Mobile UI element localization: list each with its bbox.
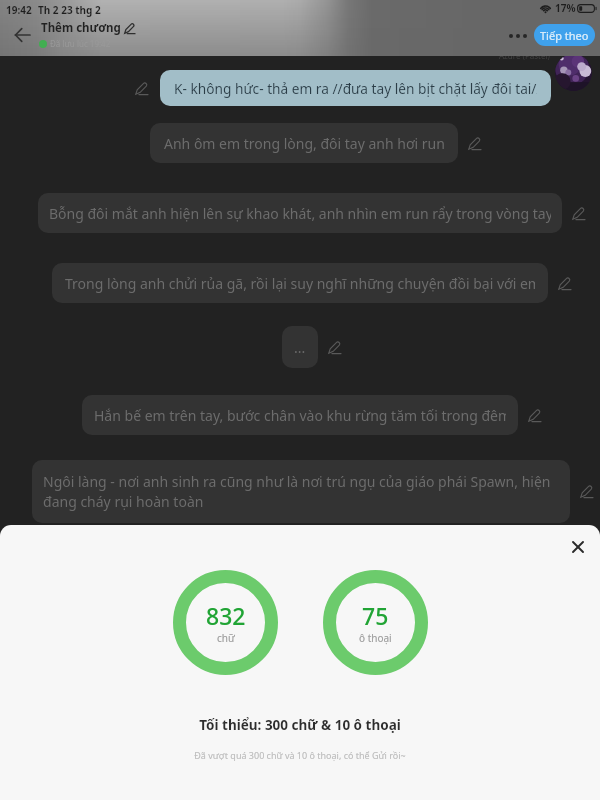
button[interactable]: Edit message	[327, 340, 342, 355]
staticText: Bỗng đôi mắt anh hiện lên sự khao khát, …	[49, 204, 551, 223]
staticText: chữ	[217, 631, 235, 645]
staticText: Anh ôm em trong lòng, đôi tay anh hơi ru…	[164, 134, 444, 153]
button[interactable]: Hắn bế em trên tay, bước chân vào khu rừ…	[82, 395, 518, 435]
button[interactable]: Edit message	[134, 81, 149, 96]
button[interactable]: Anh ôm em trong lòng, đôi tay anh hơi ru…	[150, 123, 458, 163]
button[interactable]: ...	[282, 326, 318, 368]
button[interactable]: Trong lòng anh chửi rủa gã, rồi lại suy …	[52, 263, 548, 303]
button[interactable]: Character avatar	[555, 54, 592, 91]
staticText: 19:42	[6, 3, 32, 17]
staticText: Đã lưu lúc 19:42	[50, 38, 111, 49]
button[interactable]: K- không hức- thả em ra //đưa tay lên bị…	[160, 70, 551, 106]
staticText: ...	[294, 338, 306, 357]
button[interactable]: Edit message	[571, 206, 586, 221]
staticText: ô thoại	[359, 631, 392, 645]
staticText: Thêm chương	[41, 20, 121, 36]
staticText: 17%	[555, 1, 576, 15]
button[interactable]: Edit message	[579, 484, 594, 499]
staticText: Trong lòng anh chửi rủa gã, rồi lại suy …	[65, 274, 535, 293]
staticText: Tiếp theo	[540, 28, 589, 43]
staticText: Tối thiểu: 300 chữ & 10 ô thoại	[0, 716, 600, 734]
button[interactable]: Edit message	[557, 276, 572, 291]
button[interactable]: Edit message	[527, 408, 542, 423]
button[interactable]: Edit message	[467, 136, 482, 151]
staticText: Đã vượt quá 300 chữ và 10 ô thoại, có th…	[0, 749, 600, 761]
button[interactable]: Tiếp theo	[534, 24, 595, 46]
button[interactable]: Back	[8, 23, 36, 47]
staticText: Hắn bế em trên tay, bước chân vào khu rừ…	[94, 406, 506, 425]
staticText: Th 2 23 thg 2	[38, 3, 101, 17]
staticText: 75	[362, 600, 389, 631]
staticText: 832	[206, 600, 246, 631]
button[interactable]: Ngôi làng - nơi anh sinh ra cũng như là …	[32, 460, 570, 523]
staticText: Ngôi làng - nơi anh sinh ra cũng như là …	[43, 472, 559, 512]
button[interactable]: Close	[564, 533, 592, 561]
staticText: Azure (Pastel)	[499, 50, 550, 61]
staticText: K- không hức- thả em ra //đưa tay lên bị…	[174, 79, 537, 98]
button[interactable]: Bỗng đôi mắt anh hiện lên sự khao khát, …	[38, 193, 562, 233]
button[interactable]: More options	[504, 26, 532, 45]
